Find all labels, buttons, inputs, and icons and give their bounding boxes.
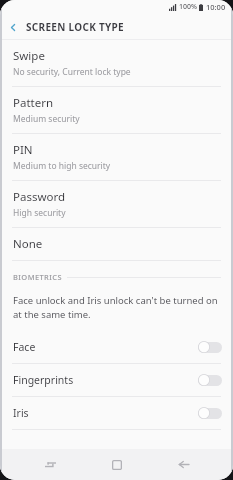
- staticText: SCREEN LOCK TYPE: [26, 20, 125, 34]
- staticText: High security: [13, 207, 66, 219]
- staticText: No security, Current lock type: [13, 66, 131, 78]
- button[interactable]: Iris: [0, 397, 233, 429]
- button[interactable]: Recents: [33, 449, 67, 480]
- staticText: 100%: [179, 2, 197, 12]
- staticText: Medium to high security: [13, 160, 111, 172]
- button[interactable]: PIN: [0, 134, 233, 180]
- button[interactable]: Back: [0, 14, 26, 40]
- staticText: BIOMETRICS: [13, 272, 62, 282]
- staticText: None: [13, 236, 43, 252]
- staticText: Face: [13, 340, 36, 354]
- staticText: Iris: [13, 406, 29, 420]
- staticText: Fingerprints: [13, 373, 74, 387]
- button[interactable]: Face: [0, 331, 233, 363]
- button[interactable]: None: [0, 228, 233, 260]
- staticText: Pattern: [13, 95, 54, 111]
- button[interactable]: Fingerprints: [0, 364, 233, 396]
- button[interactable]: Home: [100, 449, 134, 480]
- staticText: 10:00: [206, 2, 226, 12]
- button[interactable]: Password: [0, 181, 233, 227]
- button[interactable]: Swipe: [0, 40, 233, 86]
- staticText: Password: [13, 189, 66, 205]
- button[interactable]: Pattern: [0, 87, 233, 133]
- staticText: PIN: [13, 142, 33, 158]
- staticText: Face unlock and Iris unlock can't be tur…: [13, 294, 220, 321]
- staticText: Swipe: [13, 48, 45, 64]
- button[interactable]: Back: [166, 449, 200, 480]
- staticText: Medium security: [13, 113, 80, 125]
